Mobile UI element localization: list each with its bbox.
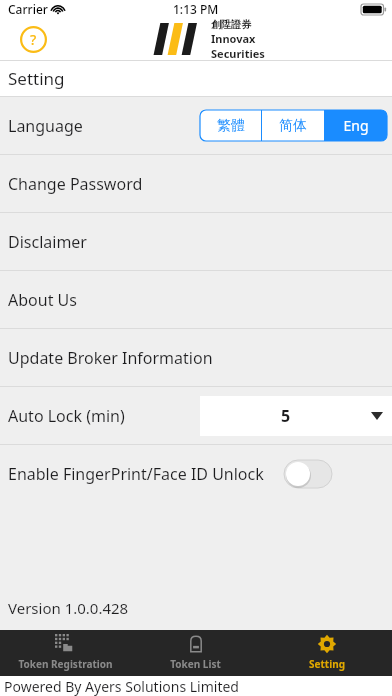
staticText: Disclaimer <box>8 231 87 253</box>
button[interactable]: Token List <box>130 630 261 676</box>
staticText: Update Broker Information <box>8 347 213 369</box>
staticText: Powered By Ayers Solutions Limited <box>4 677 239 696</box>
button[interactable]: Update Broker Information <box>0 329 392 386</box>
staticText: Eng <box>343 116 369 135</box>
button[interactable]: Change Password <box>0 155 392 212</box>
button[interactable]: Disclaimer <box>0 213 392 270</box>
button[interactable]: 5 <box>200 396 392 436</box>
staticText: 創陞證券 <box>211 18 251 31</box>
staticText: Change Password <box>8 173 143 195</box>
staticText: 1:13 PM <box>173 1 219 17</box>
button[interactable]: About Us <box>0 271 392 328</box>
staticText: Language <box>8 115 83 137</box>
staticText: Token Registration <box>18 657 113 671</box>
staticText: Carrier <box>8 1 48 17</box>
button[interactable]: Token Registration <box>0 630 130 676</box>
staticText: Setting <box>8 67 65 90</box>
button[interactable]: Setting <box>261 630 392 676</box>
staticText: Securities <box>211 46 265 60</box>
staticText: Setting <box>309 657 345 671</box>
button[interactable]: Enable FingerPrint or Face ID Unlock <box>284 460 332 488</box>
staticText: ? <box>30 30 37 49</box>
button[interactable]: 繁體 <box>200 110 261 141</box>
button[interactable]: Eng <box>325 110 387 141</box>
staticText: 繁體 <box>217 117 245 135</box>
staticText: Innovax <box>211 31 256 46</box>
staticText: Version 1.0.0.428 <box>8 598 129 618</box>
staticText: About Us <box>8 289 77 311</box>
staticText: Auto Lock (min) <box>8 405 125 427</box>
staticText: 5 <box>281 405 291 427</box>
button[interactable]: Help <box>12 18 54 60</box>
staticText: Token List <box>170 657 221 671</box>
staticText: 简体 <box>279 117 307 135</box>
staticText: Enable FingerPrint/Face ID Unlock <box>8 463 264 485</box>
button[interactable]: 简体 <box>262 110 324 141</box>
